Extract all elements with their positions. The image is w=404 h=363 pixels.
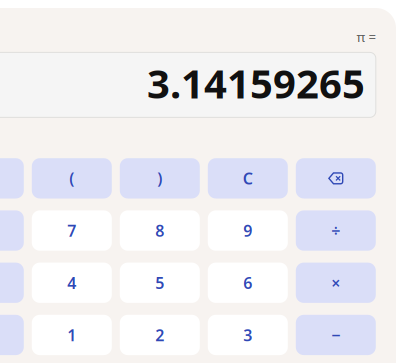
button[interactable]: ( [32, 158, 112, 198]
staticText: − [331, 324, 340, 345]
button[interactable]: ) [120, 158, 200, 198]
button[interactable]: 1 [32, 315, 112, 355]
staticText: ÷ [331, 220, 340, 241]
button[interactable]: 4 [32, 263, 112, 303]
staticText: × [331, 272, 340, 293]
button[interactable]: 8 [120, 210, 200, 251]
button[interactable]: Delete [296, 158, 376, 198]
staticText: 2 [155, 324, 164, 345]
staticText: 3.14159265 [147, 56, 365, 109]
staticText: 8 [155, 220, 164, 241]
button[interactable]: C [208, 158, 288, 198]
staticText: ) [157, 168, 162, 189]
button[interactable] [0, 210, 24, 251]
button[interactable]: ÷ [296, 210, 376, 251]
staticText: 5 [155, 272, 164, 293]
button[interactable]: − [296, 315, 376, 355]
button[interactable] [0, 263, 24, 303]
button[interactable] [0, 315, 24, 355]
button[interactable]: 3 [208, 315, 288, 355]
button[interactable]: 2 [120, 315, 200, 355]
staticText: ( [69, 168, 74, 189]
button[interactable] [0, 158, 24, 198]
button[interactable]: 9 [208, 210, 288, 251]
staticText: 4 [67, 272, 76, 293]
staticText: 1 [67, 324, 76, 345]
button[interactable]: × [296, 263, 376, 303]
staticText: 3 [243, 324, 252, 345]
button[interactable]: 5 [120, 263, 200, 303]
button[interactable]: 7 [32, 210, 112, 251]
button[interactable]: 6 [208, 263, 288, 303]
staticText: 9 [243, 220, 252, 241]
staticText: π = [356, 28, 376, 46]
staticText: 6 [243, 272, 252, 293]
staticText: C [243, 168, 253, 189]
staticText: 7 [67, 220, 76, 241]
